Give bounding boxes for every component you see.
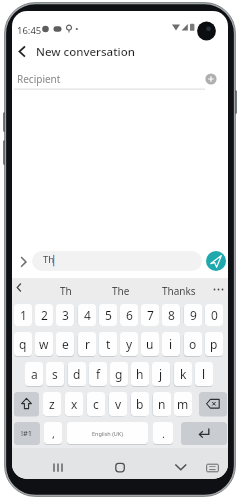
button[interactable] [204,72,218,86]
button[interactable]: v [109,392,127,416]
button[interactable] [32,251,202,271]
button[interactable]: l [195,362,213,386]
staticText: p [210,336,218,352]
button[interactable] [110,457,130,477]
staticText: Th [43,253,55,266]
staticText: 2 [41,307,48,323]
staticText: Th [60,284,72,298]
button[interactable]: !#1 [14,422,40,444]
staticText: , [52,426,55,441]
staticText: m [177,396,189,412]
button[interactable] [14,43,30,60]
button[interactable]: 3 [56,304,74,326]
staticText: w [39,336,49,352]
button[interactable]: f [89,362,107,386]
button[interactable]: o [184,332,202,356]
staticText: l [202,366,206,382]
button[interactable]: 9 [184,304,202,326]
button[interactable]: i [162,332,180,356]
staticText: k [180,366,187,382]
button[interactable]: The [106,283,136,299]
staticText: The [112,284,130,298]
staticText: r [85,336,90,352]
staticText: 9 [190,307,197,323]
staticText: o [189,336,197,352]
staticText: 1 [20,307,27,323]
button[interactable]: w [35,332,53,356]
button[interactable]: Thanks [160,283,197,299]
staticText: 4 [84,307,91,323]
button[interactable]: s [46,362,64,386]
button[interactable]: y [120,332,138,356]
button[interactable]: d [68,362,86,386]
button[interactable]: g [110,362,128,386]
button[interactable]: 0 [205,304,223,326]
staticText: 7 [147,307,154,323]
button[interactable]: Th [56,283,76,299]
button[interactable] [14,392,39,416]
staticText: q [19,336,27,352]
staticText: y [126,336,133,352]
staticText: Recipient [17,72,61,86]
button[interactable]: 1 [14,304,32,326]
button[interactable]: 6 [120,304,138,326]
button[interactable]: q [14,332,32,356]
staticText: a [31,366,38,382]
button[interactable] [48,457,68,477]
staticText: i [169,336,173,352]
button[interactable]: k [174,362,192,386]
button[interactable]: a [25,362,43,386]
button[interactable]: 4 [78,304,96,326]
staticText: z [49,396,55,412]
button[interactable]: z [43,392,61,416]
button[interactable]: x [65,392,83,416]
button[interactable]: 2 [35,304,53,326]
staticText: 16:45 [17,24,42,37]
button[interactable]: New conversation [36,44,135,60]
staticText: g [115,366,123,382]
button[interactable]: 8 [162,304,180,326]
button[interactable] [206,251,226,271]
button[interactable]: m [174,392,192,416]
button[interactable]: p [205,332,223,356]
staticText: e [62,336,69,352]
staticText: f [96,366,101,382]
staticText: 0 [211,307,218,323]
button[interactable]: English (UK) [67,422,148,444]
button[interactable]: n [153,392,171,416]
staticText: English (UK) [92,430,123,437]
button[interactable]: u [141,332,159,356]
button[interactable] [199,392,227,416]
button[interactable]: 7 [141,304,159,326]
staticText: t [106,336,111,352]
staticText: 6 [126,307,133,323]
staticText: New conversation [36,44,135,60]
button[interactable]: . [153,422,173,444]
button[interactable]: h [131,362,149,386]
staticText: Thanks [162,284,196,298]
staticText: j [159,366,163,382]
staticText: h [136,366,144,382]
staticText: d [73,366,81,382]
staticText: 3 [62,307,69,323]
staticText: v [115,396,122,412]
button[interactable]: b [131,392,149,416]
button[interactable]: j [152,362,170,386]
staticText: b [136,396,144,412]
staticText: 5 [105,307,112,323]
button[interactable] [181,422,227,444]
button[interactable]: 5 [99,304,117,326]
button[interactable]: r [78,332,96,356]
staticText: s [52,366,58,382]
staticText: u [146,336,154,352]
button[interactable]: c [87,392,105,416]
staticText: n [158,396,166,412]
staticText: !#1 [21,428,33,438]
staticText: x [71,396,78,412]
button[interactable]: , [44,422,62,444]
staticText: . [162,426,165,441]
button[interactable]: e [56,332,74,356]
button[interactable] [171,457,191,477]
button[interactable]: t [99,332,117,356]
staticText: c [93,396,99,412]
